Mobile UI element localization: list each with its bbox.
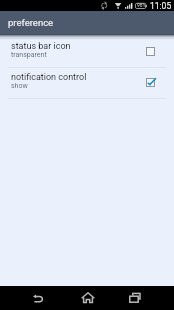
button[interactable]: notification control <box>0 68 174 98</box>
staticText: 98% <box>137 3 146 9</box>
button[interactable]: Back <box>17 286 59 310</box>
button[interactable]: Recent apps <box>115 286 155 310</box>
button[interactable]: preference <box>0 11 174 34</box>
other: Unchecked <box>146 47 160 61</box>
staticText: preference <box>8 17 54 28</box>
staticText: transparent <box>11 51 47 59</box>
staticText: status bar icon <box>11 41 71 52</box>
button[interactable]: status bar icon <box>0 37 174 67</box>
staticText: 11:05 <box>150 1 172 11</box>
staticText: show <box>11 82 28 90</box>
staticText: notification control <box>11 72 87 83</box>
button[interactable]: Home <box>67 286 108 310</box>
other: Checked <box>146 78 160 92</box>
